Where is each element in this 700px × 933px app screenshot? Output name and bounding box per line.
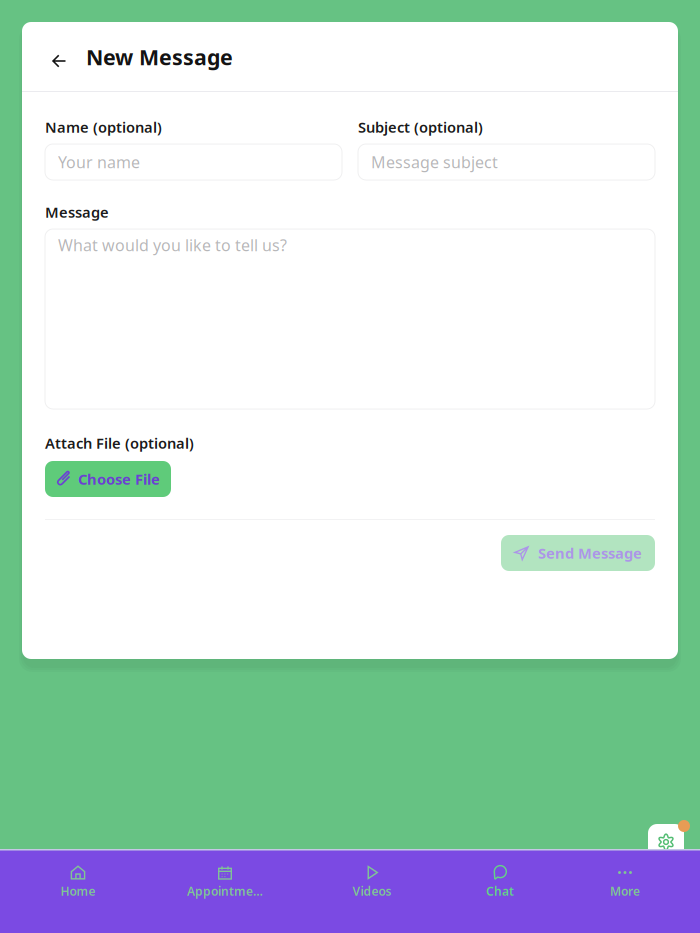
staticText: New Message — [86, 43, 233, 71]
button[interactable]: Send Message — [501, 535, 655, 571]
button[interactable]: More — [550, 851, 700, 931]
button[interactable]: Choose File — [45, 461, 171, 497]
staticText: Send Message — [538, 543, 642, 563]
staticText: Attach File (optional) — [45, 433, 194, 453]
staticText: What would you like to tell us? — [58, 234, 287, 256]
button[interactable]: Appointme… — [156, 851, 294, 931]
staticText: Message — [45, 202, 109, 222]
staticText: More — [610, 883, 640, 899]
staticText: Your name — [58, 151, 140, 173]
button[interactable]: Videos — [294, 851, 450, 931]
staticText: Videos — [352, 883, 391, 899]
button[interactable]: Home — [0, 851, 156, 931]
staticText: Appointme… — [187, 883, 263, 899]
button[interactable]: Settings — [648, 824, 684, 860]
staticText: Name (optional) — [45, 117, 162, 137]
staticText: Choose File — [78, 469, 160, 489]
staticText: Chat — [486, 883, 514, 899]
button[interactable]: Back — [42, 37, 76, 77]
staticText: Subject (optional) — [358, 117, 483, 137]
staticText: Message subject — [371, 151, 498, 173]
staticText: Home — [60, 883, 95, 899]
button[interactable]: Chat — [450, 851, 550, 931]
